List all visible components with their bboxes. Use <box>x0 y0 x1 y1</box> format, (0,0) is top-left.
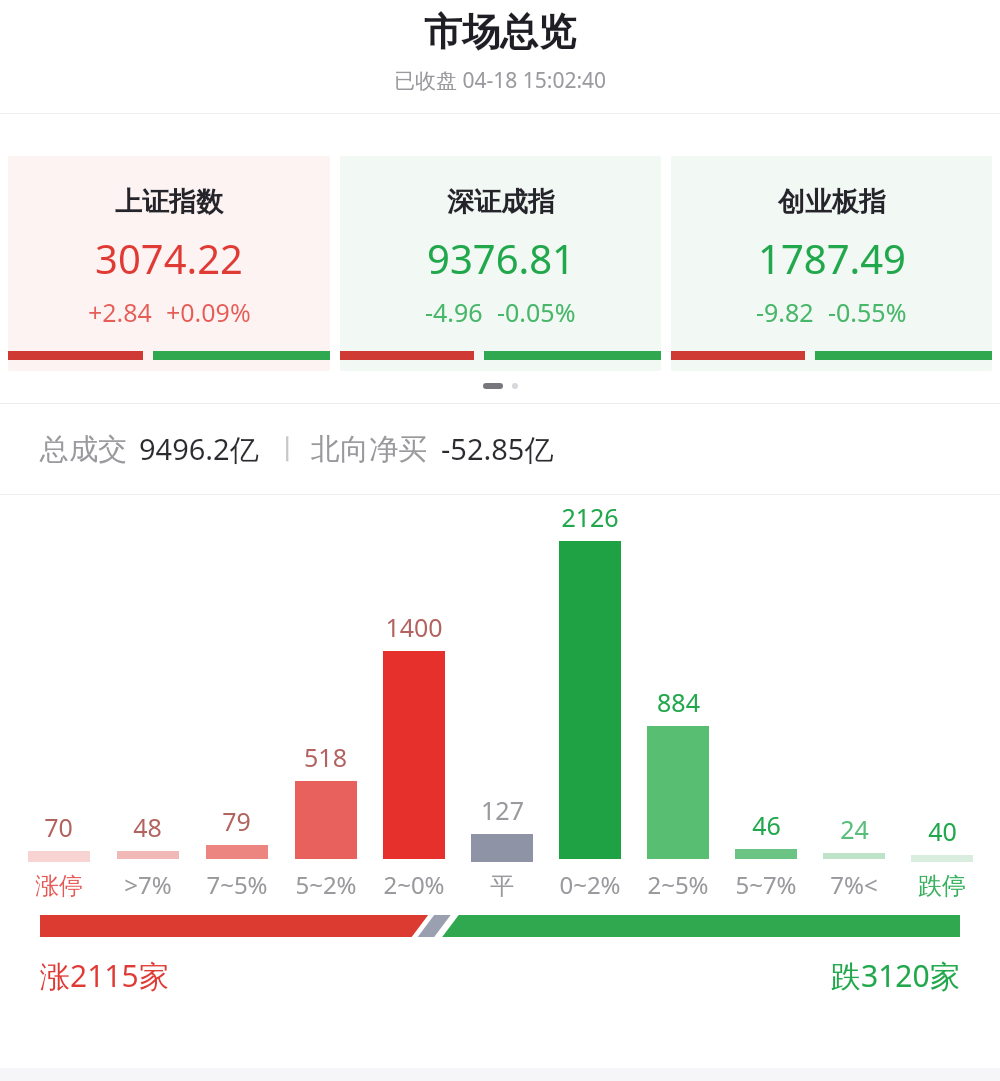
staticText: 9376.81 <box>427 231 575 285</box>
staticText: 3074.22 <box>95 231 243 285</box>
button[interactable]: 884 <box>634 495 722 911</box>
staticText: 2~0% <box>383 868 445 901</box>
button[interactable]: 46 <box>722 495 810 911</box>
staticText: 北向净买 <box>311 431 427 468</box>
staticText: 884 <box>657 685 700 719</box>
staticText: 5~7% <box>735 868 797 901</box>
button[interactable]: 深证成指 <box>340 156 661 371</box>
staticText: 丨 <box>275 433 301 466</box>
staticText: +2.84 <box>88 295 152 329</box>
staticText: >7% <box>124 868 172 901</box>
staticText: 79 <box>222 804 251 838</box>
staticText: 跌3120家 <box>831 955 960 996</box>
staticText: +0.09% <box>166 295 251 329</box>
staticText: 2126 <box>561 500 619 534</box>
button[interactable]: 上证指数 <box>8 156 330 371</box>
button[interactable]: 总成交 <box>0 404 1000 494</box>
staticText: 创业板指 <box>778 185 886 219</box>
button[interactable]: 24 <box>810 495 898 911</box>
staticText: -9.82 <box>756 295 814 329</box>
staticText: 40 <box>928 814 957 848</box>
staticText: 平 <box>490 871 514 901</box>
staticText: 518 <box>304 740 347 774</box>
staticText: 127 <box>481 793 524 827</box>
staticText: 0~2% <box>559 868 621 901</box>
staticText: 24 <box>840 812 869 846</box>
staticText: 涨停 <box>35 871 83 901</box>
button[interactable]: 518 <box>281 495 370 911</box>
staticText: -4.96 <box>425 295 483 329</box>
staticText: 70 <box>44 810 73 844</box>
staticText: 涨2115家 <box>40 955 169 996</box>
staticText: 7%< <box>830 868 878 901</box>
button[interactable]: 40 <box>898 495 986 911</box>
staticText: 7~5% <box>206 868 268 901</box>
staticText: 深证成指 <box>447 185 555 219</box>
staticText: 5~2% <box>295 868 357 901</box>
button[interactable]: 48 <box>103 495 192 911</box>
staticText: 2~5% <box>647 868 709 901</box>
staticText: 1400 <box>385 610 443 644</box>
button[interactable]: 2126 <box>546 495 634 911</box>
staticText: 46 <box>752 808 781 842</box>
button[interactable]: 70 <box>14 495 103 911</box>
button[interactable]: 1400 <box>370 495 458 911</box>
staticText: -0.55% <box>828 295 907 329</box>
staticText: 上证指数 <box>115 185 223 219</box>
staticText: 1787.49 <box>758 231 906 285</box>
staticText: 市场总览 <box>424 8 576 56</box>
staticText: -52.85亿 <box>441 429 554 469</box>
staticText: 已收盘 04-18 15:02:40 <box>394 66 607 95</box>
staticText: 9496.2亿 <box>139 429 259 469</box>
staticText: 总成交 <box>40 431 127 468</box>
button[interactable]: 79 <box>192 495 281 911</box>
button[interactable]: 涨跌比例 <box>40 915 960 937</box>
staticText: -0.05% <box>497 295 576 329</box>
staticText: 48 <box>133 810 162 844</box>
button[interactable]: 创业板指 <box>671 156 992 371</box>
button[interactable]: 127 <box>458 495 546 911</box>
staticText: 跌停 <box>918 871 966 901</box>
